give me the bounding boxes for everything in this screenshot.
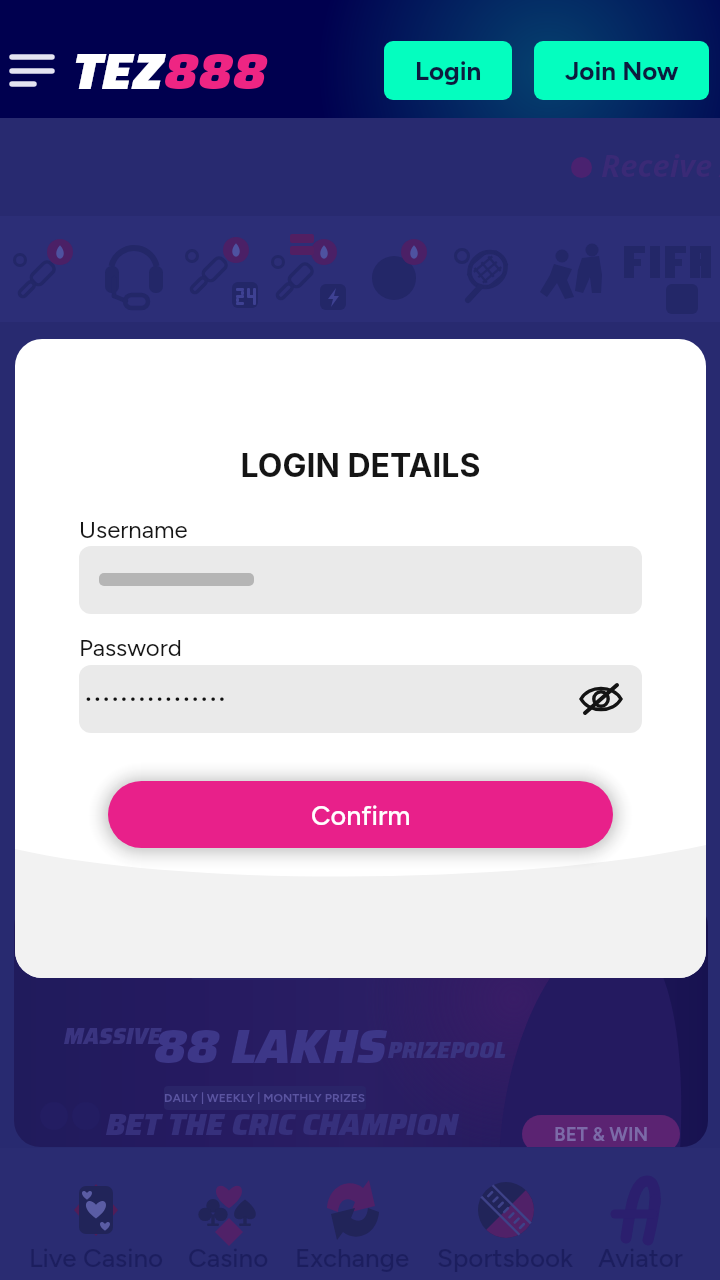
staticText: 888	[164, 32, 268, 111]
staticText: Confirm	[311, 799, 411, 831]
staticText: ••••••••••••••••	[84, 687, 227, 709]
staticText: Login	[415, 55, 482, 86]
staticText: Sportsbook	[437, 1242, 574, 1273]
button[interactable]: Confirm	[108, 781, 613, 848]
staticText: Aviator	[598, 1242, 683, 1273]
staticText: Password	[79, 633, 182, 662]
button[interactable]: Casino	[166, 1181, 291, 1280]
button[interactable]: Aviator	[573, 1181, 708, 1280]
button[interactable]	[79, 546, 642, 614]
staticText: PRIZEPOOL	[388, 1033, 506, 1068]
staticText: DAILY | WEEKLY | MONTHLY PRIZES	[164, 1091, 366, 1105]
button[interactable]: Menu	[4, 44, 60, 96]
button[interactable]: Login	[384, 41, 512, 100]
button[interactable]: Exchange	[275, 1181, 430, 1280]
staticText: Live Casino	[29, 1242, 164, 1273]
staticText: Join Now	[565, 55, 679, 86]
staticText: Receive A	[601, 144, 720, 186]
staticText: MASSIVE	[64, 1019, 161, 1054]
staticText: 88 LAKHS	[154, 1009, 386, 1085]
button[interactable]: Join Now	[534, 41, 709, 100]
button[interactable]: ••••••••••••••••	[79, 665, 642, 733]
button[interactable]: Live Casino	[11, 1181, 181, 1280]
staticText: BET THE CRIC CHAMPION	[106, 1101, 459, 1147]
button[interactable]: Sportsbook	[418, 1181, 593, 1280]
staticText: Casino	[188, 1242, 269, 1273]
staticText: Exchange	[295, 1242, 410, 1273]
staticText: BET & WIN	[554, 1123, 649, 1146]
button[interactable]: Show password	[578, 676, 624, 722]
staticText: LOGIN DETAILS	[15, 446, 706, 485]
staticText: TEZ	[73, 32, 164, 111]
staticText: Username	[79, 515, 188, 544]
